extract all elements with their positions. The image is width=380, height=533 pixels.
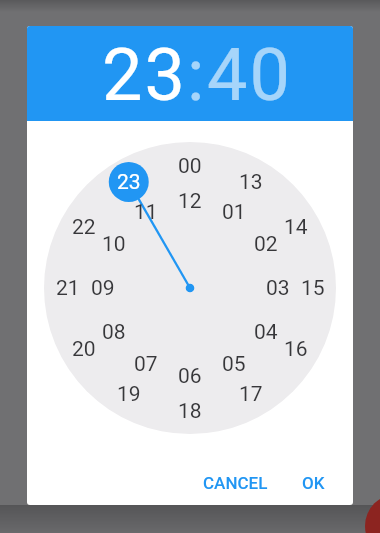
staticText: 14: [284, 215, 308, 240]
staticText: 04: [254, 320, 278, 345]
button[interactable]: 15: [283, 273, 343, 303]
button[interactable]: 40: [207, 33, 292, 117]
staticText: 12: [178, 189, 202, 214]
staticText: 16: [284, 337, 308, 362]
button[interactable]: 06: [160, 361, 220, 391]
button[interactable]: 01: [204, 197, 264, 227]
button[interactable]: 23: [102, 33, 187, 117]
staticText: 13: [239, 170, 263, 195]
button[interactable]: 07: [116, 349, 176, 379]
staticText: 07: [134, 352, 158, 377]
button[interactable]: 17: [221, 379, 281, 409]
staticText: 03: [266, 276, 290, 301]
button[interactable]: 00: [160, 151, 220, 181]
staticText: 23: [117, 170, 141, 195]
button[interactable]: 05: [204, 349, 264, 379]
button[interactable]: 23: [99, 167, 159, 197]
button[interactable]: 10: [84, 229, 144, 259]
staticText: 10: [102, 232, 126, 257]
staticText: 17: [239, 382, 263, 407]
staticText: OK: [302, 473, 325, 493]
staticText: CANCEL: [203, 473, 268, 493]
staticText: 11: [134, 200, 158, 225]
button[interactable]: 09: [73, 273, 133, 303]
button[interactable]: 08: [84, 317, 144, 347]
button[interactable]: 04: [236, 317, 296, 347]
button[interactable]: [365, 494, 380, 533]
button[interactable]: 21: [38, 273, 98, 303]
button[interactable]: 02: [236, 229, 296, 259]
button[interactable]: 22: [54, 212, 114, 242]
staticText: 05: [222, 352, 246, 377]
button[interactable]: 13: [221, 167, 281, 197]
button[interactable]: 14: [266, 212, 326, 242]
staticText: 09: [91, 276, 115, 301]
button[interactable]: 12: [160, 186, 220, 216]
button[interactable]: OK: [293, 460, 333, 505]
staticText: 06: [178, 364, 202, 389]
staticText: 08: [102, 320, 126, 345]
staticText: 15: [301, 276, 325, 301]
staticText: 20: [72, 337, 96, 362]
staticText: :: [187, 33, 207, 117]
staticText: 22: [72, 215, 96, 240]
staticText: 01: [222, 200, 246, 225]
button[interactable]: 11: [116, 197, 176, 227]
staticText: 00: [178, 154, 202, 179]
staticText: 19: [117, 382, 141, 407]
button[interactable]: 18: [160, 396, 220, 426]
button[interactable]: 19: [99, 379, 159, 409]
button[interactable]: 16: [266, 334, 326, 364]
staticText: 21: [56, 276, 80, 301]
button[interactable]: CANCEL: [200, 460, 270, 505]
button[interactable]: 20: [54, 334, 114, 364]
staticText: 18: [178, 399, 202, 424]
staticText: 02: [254, 232, 278, 257]
button[interactable]: 03: [248, 273, 308, 303]
